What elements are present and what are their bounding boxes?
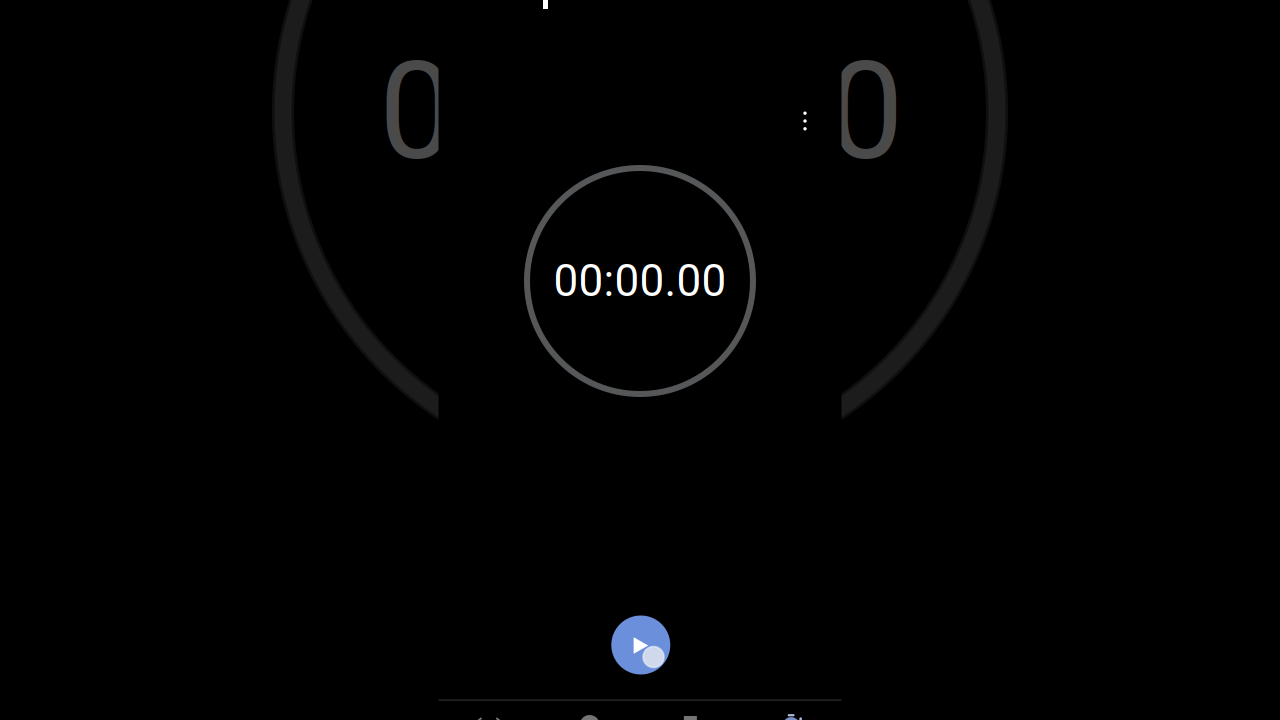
button[interactable]: Alarm <box>438 700 539 720</box>
button[interactable]: More options <box>783 99 827 143</box>
button[interactable]: Clock <box>539 700 640 720</box>
button[interactable]: Start <box>611 615 670 674</box>
staticText: 00:00.00 <box>553 255 726 307</box>
button[interactable]: Stopwatch <box>741 700 842 720</box>
button[interactable]: Timer <box>640 700 741 720</box>
staticText: 00:00.00 <box>379 33 904 191</box>
